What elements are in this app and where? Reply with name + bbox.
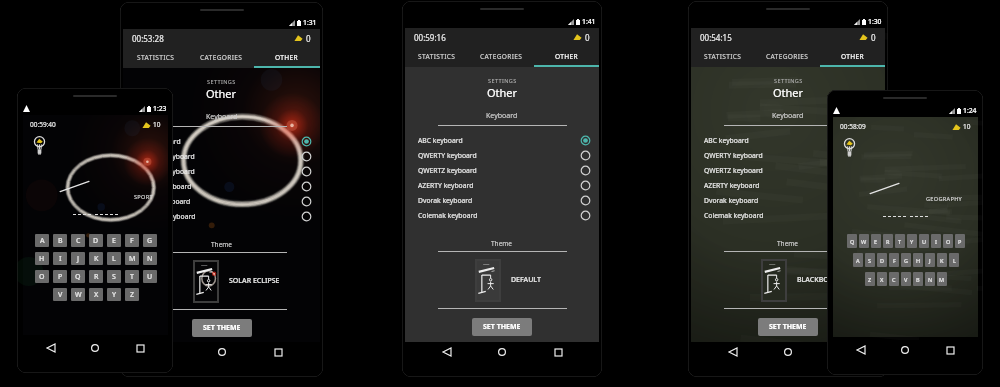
button[interactable]: SET THEME bbox=[758, 318, 818, 336]
button[interactable]: ABC keyboard bbox=[136, 134, 312, 149]
button[interactable]: Colemak keyboard bbox=[136, 209, 312, 224]
button[interactable]: QWERTZ keyboard bbox=[136, 164, 312, 179]
button[interactable]: Z bbox=[865, 272, 875, 286]
button[interactable]: J bbox=[71, 252, 85, 265]
button[interactable]: U bbox=[143, 270, 157, 283]
button[interactable]: BLACKBOARD bbox=[691, 252, 885, 308]
button[interactable]: Dvorak keyboard bbox=[418, 193, 591, 208]
button[interactable]: AZERTY keyboard bbox=[418, 178, 591, 193]
button[interactable]: U bbox=[919, 234, 929, 248]
button[interactable]: CATEGORIES bbox=[755, 46, 820, 67]
button[interactable]: Home bbox=[777, 342, 799, 362]
button[interactable]: C bbox=[889, 272, 899, 286]
button[interactable]: QWERTY keyboard bbox=[418, 148, 591, 163]
button[interactable]: X bbox=[89, 288, 103, 301]
button[interactable]: STATISTICS bbox=[123, 47, 188, 68]
button[interactable]: Recent apps bbox=[939, 340, 961, 360]
button[interactable]: Back bbox=[154, 342, 176, 362]
button[interactable]: Q bbox=[847, 234, 857, 248]
button[interactable]: Z bbox=[125, 288, 139, 301]
button[interactable]: QWERTZ keyboard bbox=[418, 163, 591, 178]
button[interactable]: E bbox=[107, 234, 121, 247]
button[interactable]: T bbox=[125, 270, 139, 283]
button[interactable]: SET THEME bbox=[472, 318, 532, 336]
button[interactable]: SOLAR ECLIPSE bbox=[123, 253, 320, 309]
button[interactable]: QWERTZ keyboard bbox=[704, 163, 877, 178]
button[interactable]: I bbox=[931, 234, 941, 248]
button[interactable]: D bbox=[89, 234, 103, 247]
button[interactable]: CATEGORIES bbox=[188, 47, 254, 68]
button[interactable]: O bbox=[943, 234, 953, 248]
button[interactable]: AZERTY keyboard bbox=[704, 178, 877, 193]
button[interactable]: L bbox=[107, 252, 121, 265]
button[interactable]: Dvorak keyboard bbox=[136, 194, 312, 209]
button[interactable]: G bbox=[143, 234, 157, 247]
button[interactable]: CATEGORIES bbox=[469, 46, 534, 67]
button[interactable]: Home bbox=[211, 342, 233, 362]
button[interactable]: Recent apps bbox=[129, 338, 151, 358]
button[interactable]: STATISTICS bbox=[691, 46, 755, 67]
button[interactable]: I bbox=[53, 252, 67, 265]
button[interactable]: P bbox=[955, 234, 965, 248]
button[interactable]: V bbox=[901, 272, 911, 286]
button[interactable]: Back bbox=[850, 340, 872, 360]
button[interactable]: C bbox=[71, 234, 85, 247]
button[interactable]: DEFAULT bbox=[405, 252, 599, 308]
button[interactable]: W bbox=[859, 234, 869, 248]
button[interactable]: AZERTY keyboard bbox=[136, 179, 312, 194]
button[interactable]: Back bbox=[436, 342, 458, 362]
button[interactable]: V bbox=[53, 288, 67, 301]
button[interactable]: ABC keyboard bbox=[704, 133, 877, 148]
button[interactable]: Y bbox=[107, 288, 121, 301]
button[interactable]: QWERTY keyboard bbox=[704, 148, 877, 163]
button[interactable]: H bbox=[913, 253, 923, 267]
button[interactable]: B bbox=[913, 272, 923, 286]
button[interactable]: Dvorak keyboard bbox=[704, 193, 877, 208]
button[interactable]: OTHER bbox=[534, 46, 599, 67]
button[interactable]: G bbox=[901, 253, 911, 267]
button[interactable]: D bbox=[877, 253, 887, 267]
button[interactable]: W bbox=[71, 288, 85, 301]
button[interactable]: P bbox=[53, 270, 67, 283]
button[interactable]: Hint bbox=[841, 136, 858, 158]
button[interactable]: STATISTICS bbox=[405, 46, 469, 67]
button[interactable]: M bbox=[937, 272, 947, 286]
button[interactable]: Home bbox=[894, 340, 916, 360]
button[interactable]: Y bbox=[907, 234, 917, 248]
button[interactable]: F bbox=[889, 253, 899, 267]
button[interactable]: L bbox=[949, 253, 959, 267]
button[interactable]: K bbox=[937, 253, 947, 267]
button[interactable]: R bbox=[883, 234, 893, 248]
button[interactable]: T bbox=[895, 234, 905, 248]
button[interactable]: Colemak keyboard bbox=[704, 208, 877, 223]
button[interactable]: S bbox=[107, 270, 121, 283]
button[interactable]: A bbox=[853, 253, 863, 267]
button[interactable]: ABC keyboard bbox=[418, 133, 591, 148]
button[interactable]: OTHER bbox=[254, 47, 320, 68]
button[interactable]: N bbox=[925, 272, 935, 286]
button[interactable]: J bbox=[925, 253, 935, 267]
button[interactable]: Back bbox=[722, 342, 744, 362]
button[interactable]: E bbox=[871, 234, 881, 248]
button[interactable]: S bbox=[865, 253, 875, 267]
button[interactable]: OTHER bbox=[820, 46, 885, 67]
button[interactable]: M bbox=[125, 252, 139, 265]
button[interactable]: Home bbox=[84, 338, 106, 358]
button[interactable]: Home bbox=[491, 342, 513, 362]
button[interactable]: Hint bbox=[31, 134, 48, 156]
button[interactable]: R bbox=[89, 270, 103, 283]
button[interactable]: H bbox=[35, 252, 49, 265]
button[interactable]: Colemak keyboard bbox=[418, 208, 591, 223]
button[interactable]: X bbox=[877, 272, 887, 286]
button[interactable]: F bbox=[125, 234, 139, 247]
button[interactable]: QWERTY keyboard bbox=[136, 149, 312, 164]
button[interactable]: N bbox=[143, 252, 157, 265]
button[interactable]: O bbox=[35, 270, 49, 283]
button[interactable]: Recent apps bbox=[547, 342, 569, 362]
button[interactable]: SET THEME bbox=[192, 319, 252, 337]
button[interactable]: Q bbox=[71, 270, 85, 283]
button[interactable]: Recent apps bbox=[267, 342, 289, 362]
button[interactable]: Back bbox=[40, 338, 62, 358]
button[interactable]: B bbox=[53, 234, 67, 247]
